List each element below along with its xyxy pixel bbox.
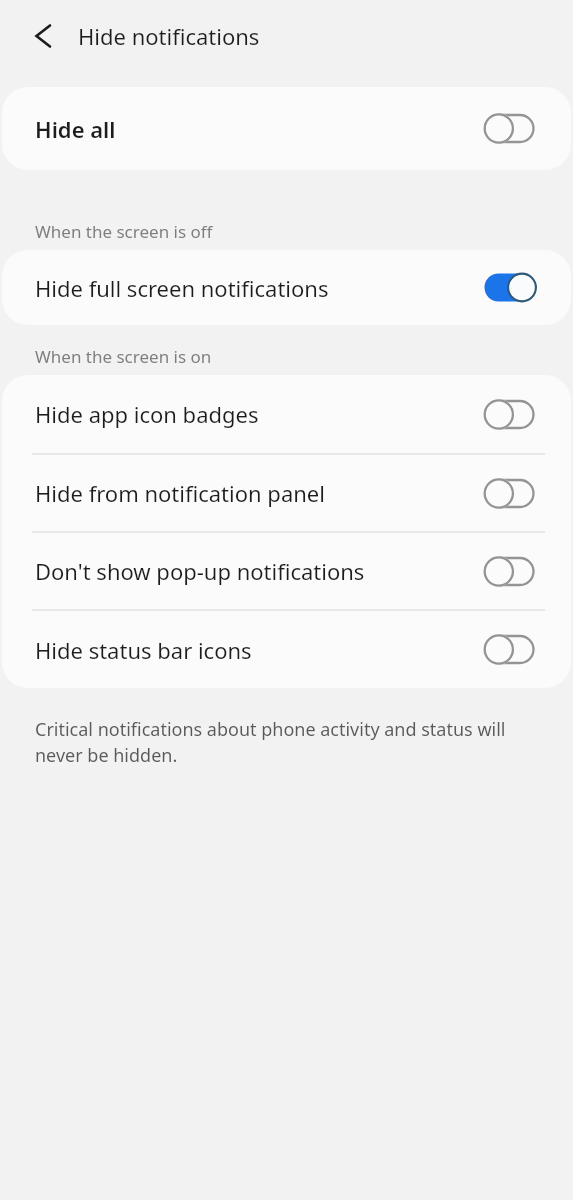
staticText: When the screen is on (35, 345, 212, 368)
button[interactable]: Hide all (2, 87, 571, 170)
button[interactable]: Hide full screen notifications (2, 250, 571, 325)
button[interactable]: Don't show pop-up notifications (2, 533, 571, 609)
staticText: Hide status bar icons (35, 635, 252, 665)
staticText: Hide all (35, 114, 116, 144)
button[interactable]: Hide from notification panel (2, 455, 571, 531)
staticText: When the screen is off (35, 220, 213, 243)
staticText: Hide app icon badges (35, 399, 259, 429)
staticText: Hide full screen notifications (35, 273, 329, 303)
button[interactable] (33, 24, 55, 48)
staticText: Critical notifications about phone activ… (35, 717, 506, 768)
staticText: Don't show pop-up notifications (35, 556, 365, 586)
staticText: Hide notifications (78, 21, 260, 51)
staticText: Hide from notification panel (35, 478, 325, 508)
button[interactable]: Hide status bar icons (2, 611, 571, 688)
button[interactable]: Hide app icon badges (2, 375, 571, 453)
